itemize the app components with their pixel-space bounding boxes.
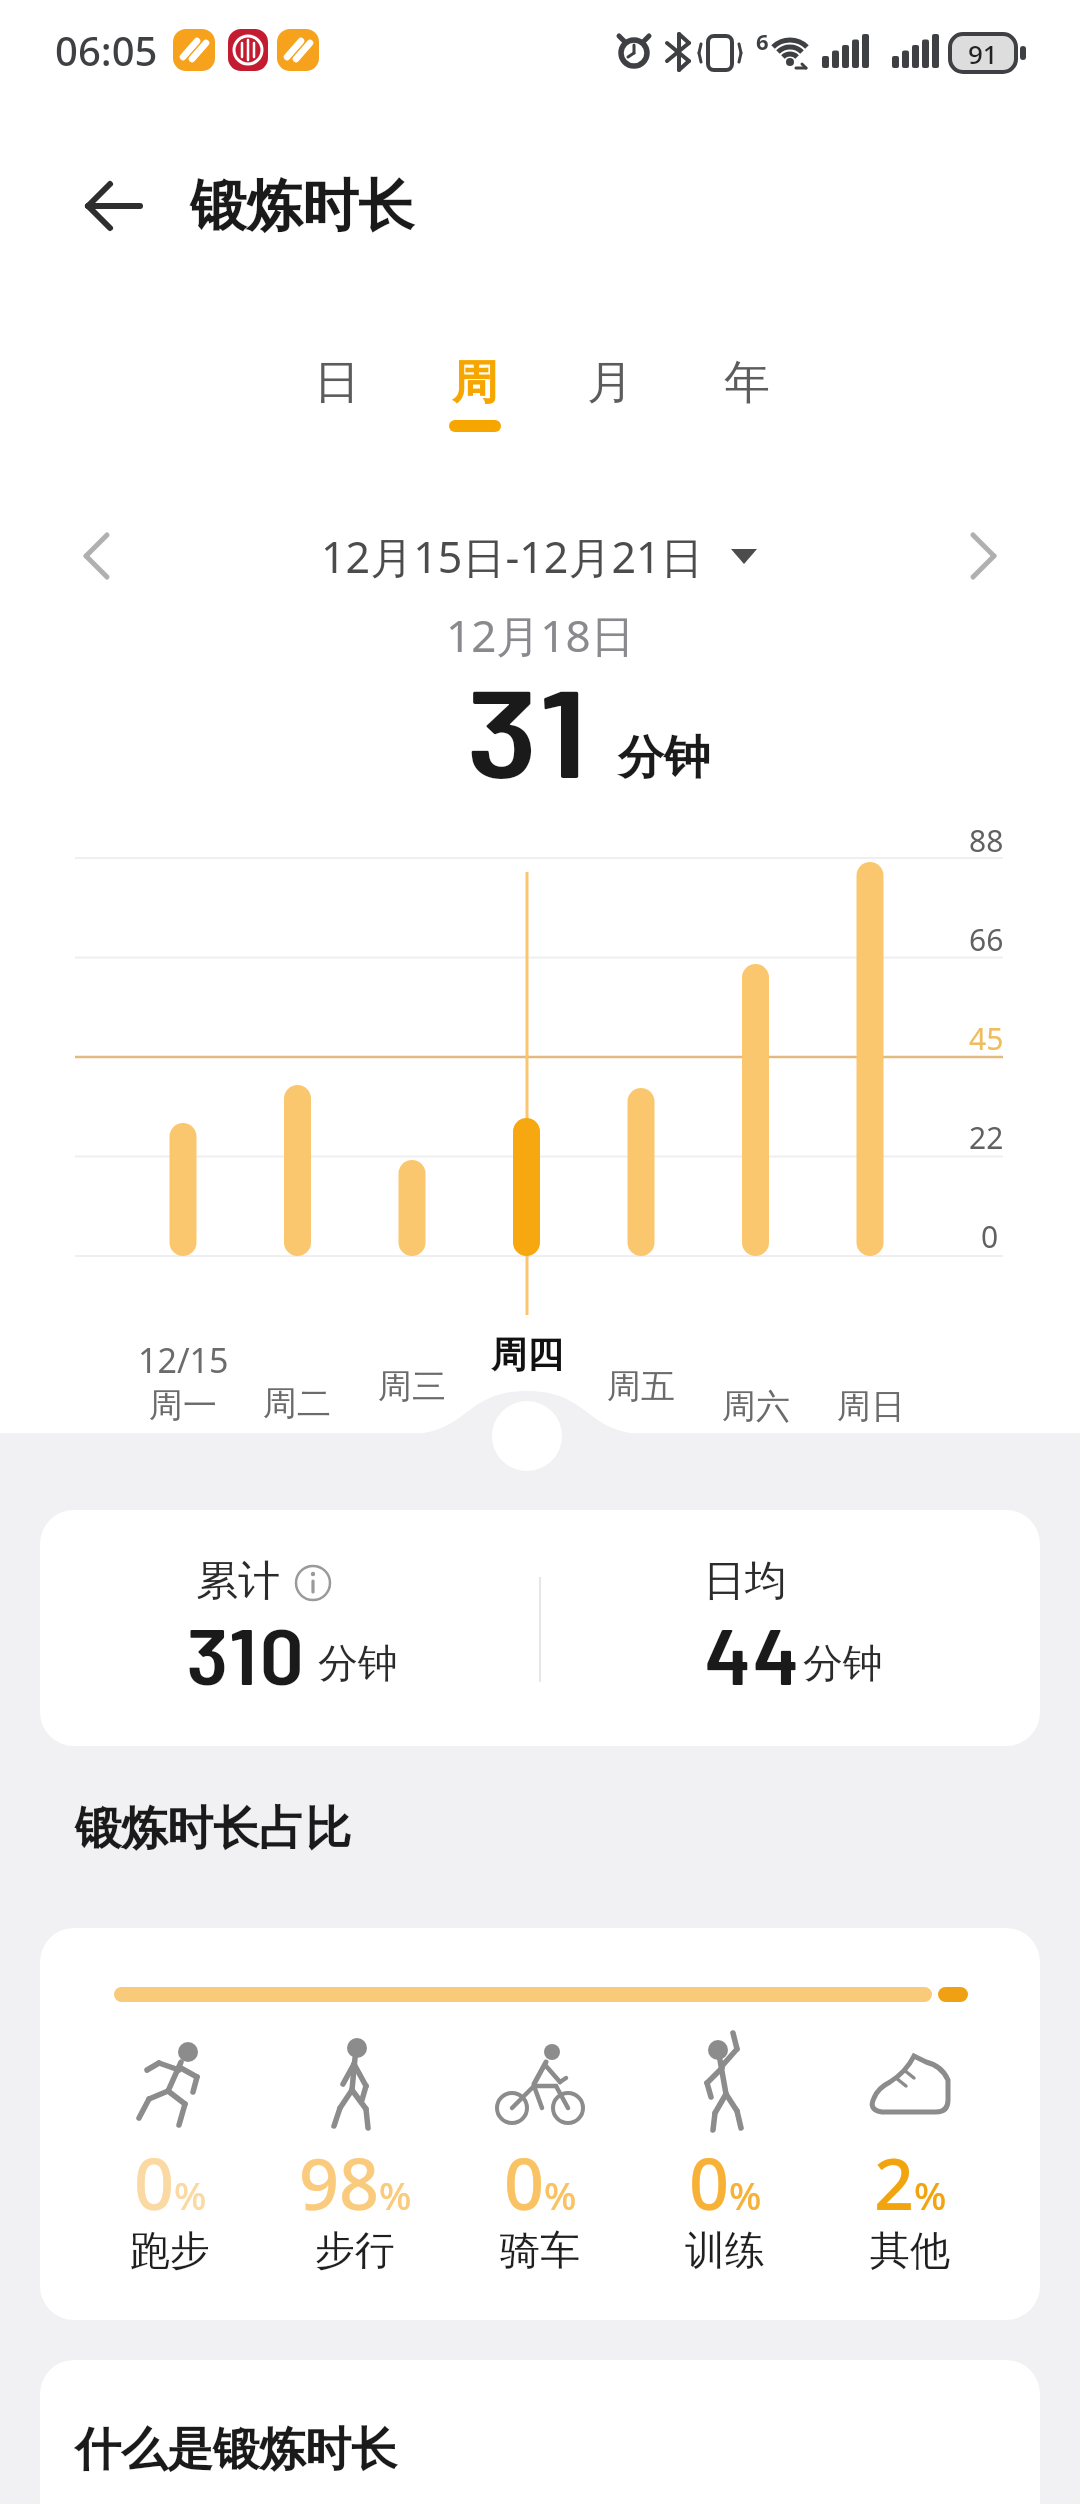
- staticText: 6: [756, 26, 769, 56]
- button[interactable]: [40, 2360, 1040, 2504]
- staticText: 周: [452, 354, 498, 412]
- staticText: 日: [314, 354, 360, 412]
- staticText: 累计: [196, 1555, 280, 1608]
- staticText: 44: [705, 1607, 802, 1701]
- staticText: 0%: [134, 2135, 207, 2230]
- staticText: 骑车: [500, 2225, 580, 2275]
- staticText: 日均: [703, 1555, 787, 1608]
- staticText: 2%: [874, 2135, 947, 2230]
- staticText: 锻炼时长占比: [75, 1800, 351, 1858]
- staticText: 周日: [837, 1385, 905, 1428]
- staticText: 什么是锻炼时长: [75, 2421, 397, 2479]
- staticText: 22: [969, 1117, 1004, 1158]
- staticText: 周四: [491, 1332, 563, 1377]
- staticText: 周一: [149, 1384, 217, 1427]
- staticText: 91: [968, 36, 998, 71]
- staticText: 周五: [607, 1365, 675, 1408]
- staticText: 其他: [870, 2225, 950, 2275]
- staticText: 12/15: [138, 1337, 229, 1383]
- staticText: 月: [587, 354, 633, 412]
- staticText: 训练: [685, 2225, 765, 2275]
- staticText: 分钟: [318, 1638, 398, 1688]
- staticText: 06:05: [55, 23, 158, 77]
- staticText: 0%: [689, 2135, 762, 2230]
- staticText: 310: [186, 1607, 307, 1701]
- button[interactable]: 月: [540, 339, 680, 426]
- button[interactable]: [948, 516, 1020, 596]
- staticText: 周六: [722, 1385, 790, 1428]
- staticText: 周三: [378, 1365, 446, 1408]
- button[interactable]: [40, 1928, 1040, 2320]
- staticText: 98%: [299, 2135, 412, 2230]
- button[interactable]: [60, 516, 132, 596]
- button[interactable]: 日: [267, 339, 407, 426]
- staticText: 锻炼时长: [190, 171, 414, 242]
- staticText: 分钟: [618, 729, 710, 787]
- staticText: 周二: [263, 1382, 331, 1425]
- button[interactable]: [66, 160, 158, 252]
- staticText: 12月18日: [446, 605, 635, 665]
- staticText: 分钟: [803, 1638, 883, 1688]
- staticText: 31: [467, 654, 591, 803]
- button[interactable]: [40, 1510, 1040, 1746]
- staticText: 88: [969, 820, 1004, 861]
- staticText: 步行: [315, 2225, 395, 2275]
- staticText: 12月15日-12月21日: [321, 527, 704, 586]
- button[interactable]: 年: [677, 339, 817, 426]
- staticText: 年: [724, 354, 770, 412]
- staticText: 66: [969, 919, 1004, 960]
- staticText: 0%: [504, 2135, 577, 2230]
- staticText: 45: [969, 1018, 1004, 1059]
- button[interactable]: 周: [405, 339, 545, 426]
- staticText: 跑步: [130, 2225, 210, 2275]
- button[interactable]: 12月15日-12月21日: [252, 516, 772, 597]
- staticText: 0: [981, 1216, 999, 1257]
